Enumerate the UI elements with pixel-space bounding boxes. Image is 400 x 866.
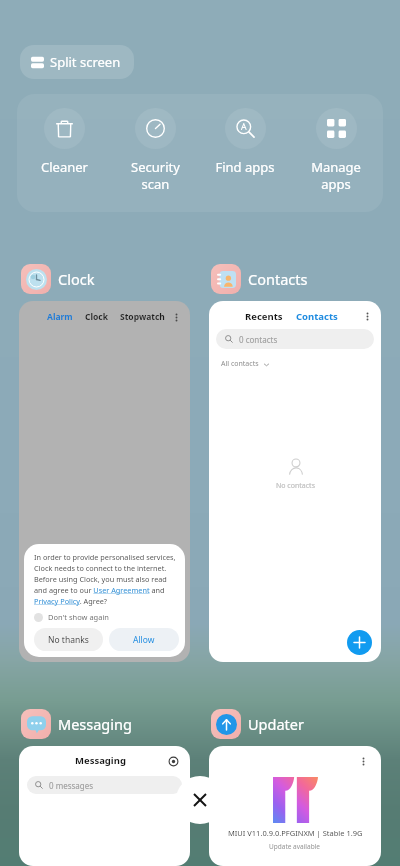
- button[interactable]: 0 messages: [27, 776, 182, 794]
- button[interactable]: Manage apps: [293, 94, 379, 193]
- button[interactable]: Find apps: [202, 94, 288, 176]
- staticText: 0 messages: [49, 780, 94, 791]
- button[interactable]: Messaging: [19, 746, 190, 866]
- staticText: Updater: [248, 714, 304, 734]
- staticText: Manage apps: [311, 158, 361, 193]
- button[interactable]: No thanks: [34, 628, 103, 651]
- staticText: Stopwatch: [120, 311, 165, 323]
- staticText: Contacts: [248, 269, 308, 289]
- button[interactable]: Don't show again: [34, 612, 109, 622]
- button[interactable]: Messaging: [21, 709, 132, 739]
- button[interactable]: MIUI V11.0.9.0.PFGINXM | Stable 1.9G: [209, 746, 381, 866]
- button[interactable]: Contacts: [211, 264, 308, 294]
- staticText: No thanks: [48, 634, 89, 646]
- button[interactable]: Alarm: [19, 301, 190, 662]
- staticText: MIUI V11.0.9.0.PFGINXM | Stable 1.9G: [228, 828, 363, 838]
- button[interactable]: Settings: [168, 756, 179, 767]
- button[interactable]: Security scan: [112, 94, 198, 193]
- button[interactable]: Recents: [209, 301, 381, 662]
- staticText: Security scan: [131, 158, 180, 193]
- staticText: Messaging: [75, 754, 126, 767]
- staticText: No contacts: [276, 481, 315, 491]
- staticText: Clock: [58, 269, 95, 289]
- staticText: In order to provide personalised service…: [34, 552, 179, 606]
- staticText: All contacts: [221, 359, 259, 369]
- button[interactable]: 0 contacts: [216, 329, 374, 349]
- staticText: Update available: [269, 842, 321, 851]
- staticText: Allow: [133, 634, 155, 646]
- staticText: Cleaner: [41, 158, 88, 176]
- staticText: Recents: [245, 310, 283, 323]
- staticText: Find apps: [215, 158, 275, 176]
- button[interactable]: Split screen: [20, 45, 134, 79]
- button[interactable]: Cleaner: [21, 94, 107, 176]
- button[interactable]: Add contact: [347, 630, 372, 655]
- button[interactable]: Updater: [211, 709, 304, 739]
- button[interactable]: Allow: [109, 628, 179, 651]
- button[interactable]: Close all apps: [176, 776, 224, 824]
- staticText: Alarm: [47, 311, 73, 323]
- staticText: Don't show again: [48, 612, 109, 622]
- staticText: Contacts: [296, 310, 338, 323]
- button[interactable]: Clock: [21, 264, 95, 294]
- button[interactable]: All contacts: [221, 359, 270, 369]
- button[interactable]: More options: [359, 757, 368, 766]
- staticText: 0 contacts: [239, 334, 278, 345]
- staticText: Messaging: [58, 714, 132, 734]
- staticText: Split screen: [50, 53, 121, 71]
- staticText: Clock: [85, 311, 108, 323]
